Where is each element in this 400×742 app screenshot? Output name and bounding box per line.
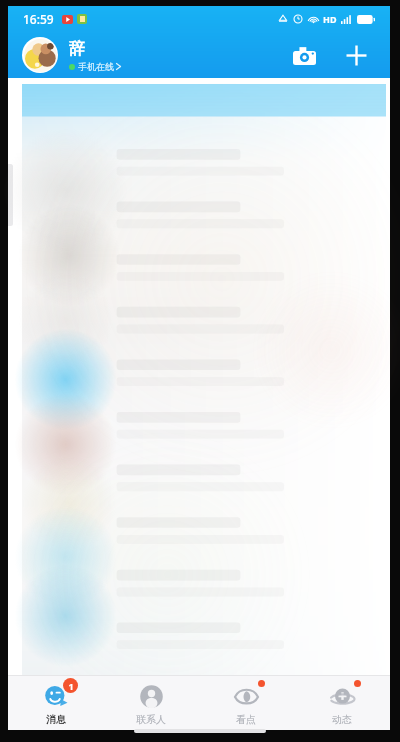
button[interactable]: 1	[8, 676, 103, 730]
button[interactable]: 联系人	[103, 676, 198, 730]
button[interactable]: 动态	[294, 676, 390, 730]
button[interactable]: Add	[336, 35, 376, 75]
button[interactable]	[22, 37, 58, 73]
staticText: 联系人	[136, 713, 166, 726]
staticText: 辞	[69, 39, 85, 59]
staticText: 动态	[332, 713, 352, 726]
staticText: 看点	[236, 713, 256, 726]
button[interactable]: 辞	[69, 39, 121, 72]
staticText: 1	[68, 680, 74, 692]
staticText: HD	[323, 13, 337, 25]
staticText: 消息	[46, 713, 66, 726]
button[interactable]: 看点	[198, 676, 294, 730]
button[interactable]: Camera	[284, 35, 324, 75]
staticText: 16:59	[23, 11, 54, 27]
staticText: 手机在线	[78, 61, 114, 72]
